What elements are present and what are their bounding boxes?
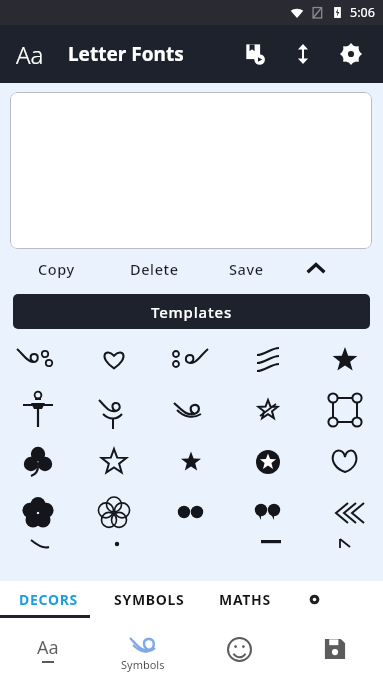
staticText: Delete [130,259,179,279]
button[interactable] [0,384,76,436]
button[interactable]: SYMBOLS [97,581,202,618]
button[interactable] [229,488,306,538]
staticText: Aa [16,38,44,71]
button[interactable]: Resize text [283,34,323,74]
button[interactable] [0,538,383,549]
button[interactable] [306,488,383,538]
button[interactable]: Copy [28,253,85,285]
button[interactable]: Settings [331,34,371,74]
staticText: Templates [151,302,232,322]
staticText: DECORS [19,590,78,609]
button[interactable]: Emoji [191,618,287,680]
button[interactable] [306,336,383,384]
button[interactable] [76,384,152,436]
button[interactable]: Save [287,618,383,680]
button[interactable] [10,92,372,249]
button[interactable] [152,436,229,488]
button[interactable] [229,336,306,384]
button[interactable]: Saved files [235,34,275,74]
button[interactable] [76,336,152,384]
button[interactable] [0,336,76,384]
staticText: MATHS [219,590,271,609]
button[interactable]: More categories [287,581,342,618]
staticText: Symbols [121,657,165,672]
staticText: Copy [38,259,75,279]
button[interactable] [76,436,152,488]
button[interactable] [306,384,383,436]
button[interactable]: DECORS [0,581,97,618]
button[interactable] [229,384,306,436]
button[interactable]: Templates [13,294,370,329]
button[interactable]: Aa [14,38,46,71]
staticText: 5:06 [350,4,375,21]
staticText: Aa [37,635,59,660]
button[interactable] [0,488,76,538]
button[interactable] [152,336,229,384]
button[interactable]: Fonts [0,618,95,680]
button[interactable]: Symbols [95,618,191,680]
staticText: Save [229,259,264,279]
button[interactable]: Delete [120,253,189,285]
button[interactable] [306,436,383,488]
button[interactable] [229,436,306,488]
staticText: SYMBOLS [114,590,185,609]
button[interactable]: Save [219,253,274,285]
staticText: Letter Fonts [68,41,184,67]
button[interactable] [76,488,152,538]
button[interactable] [0,436,76,488]
button[interactable]: MATHS [202,581,287,618]
button[interactable] [152,488,229,538]
button[interactable]: Collapse [296,249,336,289]
button[interactable] [152,384,229,436]
